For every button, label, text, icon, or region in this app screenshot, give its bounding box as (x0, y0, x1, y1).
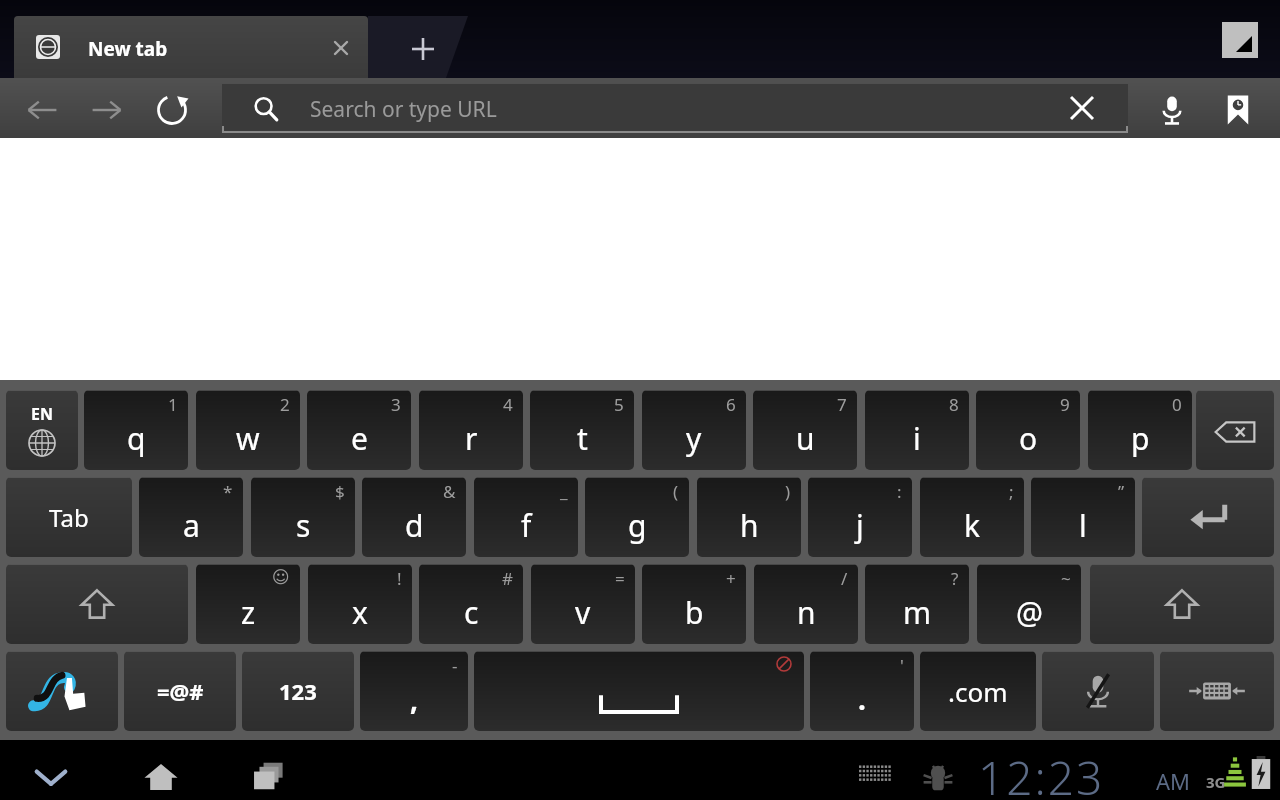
staticText: 123 (279, 676, 317, 706)
button[interactable]: . (810, 651, 914, 731)
staticText: + (726, 567, 736, 590)
staticText: EN (31, 403, 53, 425)
button[interactable]: Search or type URL (222, 84, 1128, 132)
button[interactable]: e (307, 390, 411, 470)
staticText: s (296, 505, 311, 546)
button[interactable]: k (920, 477, 1024, 557)
button[interactable]: v (531, 564, 635, 644)
button[interactable]: m (865, 564, 969, 644)
button[interactable]: Shift (1090, 564, 1274, 644)
staticText: c (464, 592, 479, 633)
staticText: / (841, 567, 848, 590)
staticText: z (241, 592, 256, 633)
staticText: e (351, 418, 368, 459)
staticText: k (964, 505, 981, 546)
staticText: 7 (837, 393, 847, 416)
button[interactable]: New tab (368, 16, 490, 78)
staticText: i (913, 418, 921, 459)
staticText: & (443, 480, 456, 503)
staticText: ! (397, 567, 402, 590)
button[interactable]: Language EN (6, 390, 78, 470)
staticText: a (183, 505, 200, 546)
button[interactable]: Reload (146, 84, 198, 136)
button[interactable]: Enter (1142, 477, 1274, 557)
staticText: w (236, 418, 260, 459)
button[interactable]: New tab (14, 16, 368, 78)
button[interactable]: Clear (1060, 86, 1104, 130)
button[interactable]: p (1088, 390, 1192, 470)
button[interactable]: g (585, 477, 689, 557)
button[interactable]: q (84, 390, 188, 470)
button[interactable]: Forward (81, 84, 133, 136)
button[interactable]: Hide keyboard (1160, 651, 1274, 731)
staticText: v (575, 592, 591, 633)
button[interactable]: Gesture input (6, 651, 118, 731)
staticText: ~ (1061, 567, 1071, 590)
staticText: Search or type URL (310, 95, 497, 124)
staticText: d (405, 505, 424, 546)
button[interactable]: @ (977, 564, 1081, 644)
staticText: 0 (1172, 393, 1182, 416)
button[interactable]: i (865, 390, 969, 470)
button[interactable]: u (753, 390, 857, 470)
staticText: 3G (1206, 772, 1226, 792)
button[interactable]: w (196, 390, 300, 470)
staticText: # (502, 567, 513, 590)
button[interactable]: Symbols (124, 651, 236, 731)
button[interactable]: Recent apps (240, 748, 298, 800)
button[interactable]: a (139, 477, 243, 557)
button[interactable]: .com (920, 651, 1036, 731)
button[interactable]: Close tab (326, 33, 356, 63)
staticText: .com (948, 674, 1008, 709)
button[interactable]: c (419, 564, 523, 644)
button[interactable]: l (1031, 477, 1135, 557)
staticText: - (452, 654, 458, 677)
button[interactable]: Back (16, 84, 68, 136)
button[interactable]: Numbers (242, 651, 354, 731)
button[interactable]: h (697, 477, 801, 557)
button[interactable]: f (474, 477, 578, 557)
button[interactable]: Shift (6, 564, 188, 644)
button[interactable]: Tab (6, 477, 132, 557)
button[interactable]: y (642, 390, 746, 470)
button[interactable]: o (976, 390, 1080, 470)
staticText: 9 (1060, 393, 1070, 416)
button[interactable]: s (251, 477, 355, 557)
staticText: = (615, 567, 625, 590)
staticText: b (685, 592, 704, 633)
staticText: New tab (88, 36, 168, 62)
button[interactable]: , (360, 651, 468, 731)
staticText: l (1079, 505, 1087, 546)
button[interactable]: t (530, 390, 634, 470)
button[interactable]: d (362, 477, 466, 557)
staticText: * (223, 480, 233, 503)
button[interactable]: Resize (1222, 22, 1258, 58)
staticText: . (858, 680, 866, 718)
button[interactable]: Home (132, 748, 190, 800)
button[interactable]: Bookmarks (1212, 84, 1264, 136)
staticText: ☺ (272, 567, 290, 587)
staticText: ; (1009, 480, 1014, 503)
button[interactable]: Delete (1196, 390, 1274, 470)
button[interactable]: j (808, 477, 912, 557)
button[interactable]: z (196, 564, 300, 644)
button[interactable]: Back (22, 748, 80, 800)
staticText: 8 (949, 393, 959, 416)
staticText: 2 (280, 393, 290, 416)
button[interactable]: r (419, 390, 523, 470)
staticText: ( (673, 480, 679, 503)
staticText: $ (335, 480, 345, 503)
button[interactable]: Space (474, 651, 804, 731)
button[interactable]: Voice search (1146, 84, 1198, 136)
staticText: _ (560, 480, 568, 503)
staticText: r (465, 418, 478, 459)
staticText: u (796, 418, 815, 459)
button[interactable]: x (308, 564, 412, 644)
staticText: q (127, 418, 146, 459)
staticText: ? (951, 567, 959, 590)
button[interactable]: b (642, 564, 746, 644)
button[interactable]: Microphone off (1042, 651, 1154, 731)
staticText: 12:23 (978, 746, 1105, 800)
staticText: n (797, 592, 816, 633)
button[interactable]: n (754, 564, 858, 644)
